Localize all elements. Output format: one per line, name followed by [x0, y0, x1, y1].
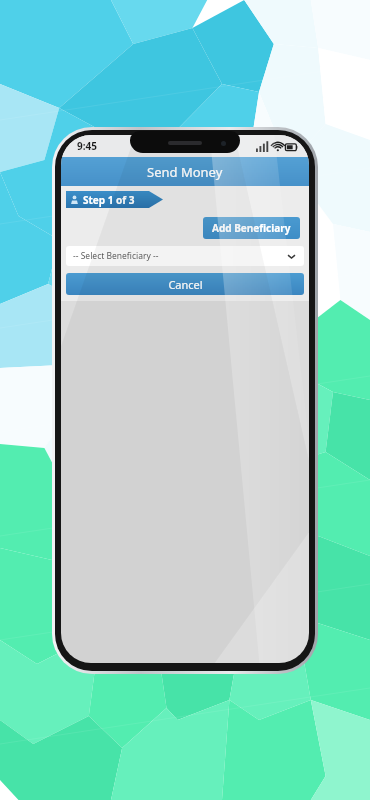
button[interactable]: Add Beneficiary	[203, 217, 300, 239]
staticText: Send Money	[147, 163, 223, 181]
staticText: Add Beneficiary	[212, 221, 291, 235]
button[interactable]: -- Select Beneficiary --	[66, 246, 304, 266]
button[interactable]: Cancel	[66, 273, 304, 295]
button[interactable]: Step 1 of 3	[66, 191, 163, 208]
staticText: 9:45	[77, 139, 97, 153]
staticText: Cancel	[168, 277, 203, 292]
staticText: Step 1 of 3	[83, 193, 135, 207]
staticText: -- Select Beneficiary --	[73, 250, 159, 262]
